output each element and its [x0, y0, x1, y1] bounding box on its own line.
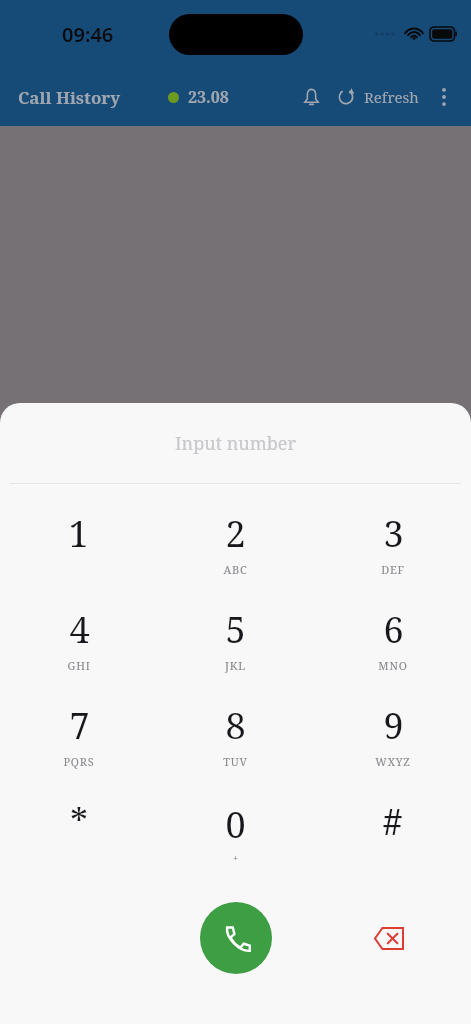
staticText: PQRS — [63, 754, 95, 769]
staticText: 1 — [68, 509, 89, 558]
staticText: 9 — [383, 701, 404, 750]
staticText: ABC — [223, 562, 248, 577]
staticText: 09:46 — [62, 21, 114, 48]
staticText: WXYZ — [375, 754, 411, 769]
button[interactable]: 1 — [0, 495, 157, 591]
button[interactable]: 8 — [157, 687, 314, 783]
staticText: JKL — [225, 658, 246, 673]
staticText: Refresh — [364, 87, 419, 107]
button[interactable]: # — [314, 783, 471, 879]
button[interactable]: Delete — [365, 914, 413, 962]
staticText: 6 — [383, 605, 404, 654]
staticText: Input number — [175, 431, 296, 456]
button[interactable]: More options — [425, 78, 463, 116]
button[interactable]: 7 — [0, 687, 157, 783]
button[interactable]: Notifications — [291, 77, 331, 117]
button[interactable]: 9 — [314, 687, 471, 783]
staticText: 5 — [225, 605, 246, 654]
staticText: + — [233, 851, 239, 863]
staticText: * — [70, 797, 88, 846]
button[interactable]: 0 — [157, 783, 314, 879]
staticText: 23.08 — [188, 86, 229, 108]
staticText: # — [382, 797, 403, 846]
staticText: 7 — [69, 701, 90, 750]
staticText: MNO — [378, 658, 408, 673]
staticText: Call History — [18, 86, 121, 109]
staticText: TUV — [223, 754, 248, 769]
button[interactable]: 3 — [314, 495, 471, 591]
staticText: DEF — [381, 562, 405, 577]
button[interactable]: Call — [200, 902, 272, 974]
button[interactable]: 2 — [157, 495, 314, 591]
staticText: 0 — [225, 800, 246, 849]
button[interactable]: 4 — [0, 591, 157, 687]
button[interactable]: Input number — [0, 403, 471, 483]
button[interactable]: 6 — [314, 591, 471, 687]
button[interactable]: * — [0, 783, 157, 879]
button[interactable]: 5 — [157, 591, 314, 687]
staticText: 3 — [383, 509, 404, 558]
staticText: 4 — [69, 605, 90, 654]
button[interactable]: Refresh — [331, 87, 425, 107]
staticText: 2 — [225, 509, 246, 558]
staticText: 8 — [225, 701, 246, 750]
staticText: GHI — [67, 658, 91, 673]
